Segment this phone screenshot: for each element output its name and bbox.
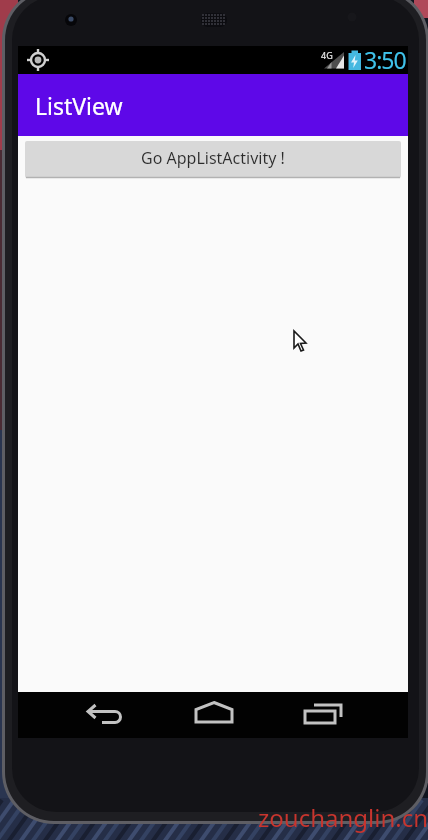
button[interactable]: [184, 692, 244, 738]
staticText: Go AppListActivity !: [141, 147, 285, 169]
staticText: zouchanglin.cn: [258, 801, 428, 834]
staticText: ListView: [35, 90, 123, 121]
staticText: 4G: [321, 49, 333, 61]
staticText: 3:50: [364, 44, 406, 72]
button[interactable]: [290, 692, 350, 738]
button[interactable]: [74, 692, 134, 738]
button[interactable]: Go AppListActivity !: [25, 141, 401, 178]
